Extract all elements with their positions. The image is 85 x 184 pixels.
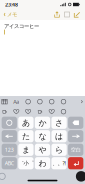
button[interactable]: Checklist <box>22 97 34 107</box>
button[interactable]: Heart emoji <box>10 107 22 117</box>
button[interactable]: ら <box>51 144 67 156</box>
staticText: 123 <box>5 146 14 153</box>
button[interactable]: Switch to ABC <box>2 157 17 169</box>
button[interactable]: さ <box>51 117 67 129</box>
button[interactable]: ゛小゜ <box>18 157 33 169</box>
staticText: ま <box>22 145 30 155</box>
button[interactable]: わ <box>35 157 50 169</box>
button[interactable]: は <box>51 130 67 142</box>
button[interactable]: な <box>35 130 50 142</box>
staticText: あ <box>22 118 30 128</box>
button[interactable]: Photo <box>34 97 46 107</box>
button[interactable]: 123 <box>2 144 17 156</box>
button[interactable]: More emoji <box>58 107 69 117</box>
button[interactable]: あ <box>18 117 33 129</box>
staticText: ゛小゜ <box>18 160 33 167</box>
button[interactable]: Share <box>52 9 62 20</box>
staticText: メモ <box>7 11 17 18</box>
button[interactable]: Markup <box>58 97 69 107</box>
button[interactable]: Camera <box>46 97 58 107</box>
staticText: 空白 <box>71 146 81 153</box>
staticText: アイスコーヒー <box>4 23 39 30</box>
button[interactable]: や <box>35 144 50 156</box>
staticText: 、。?! <box>53 160 66 167</box>
button[interactable]: Delete <box>68 117 83 129</box>
staticText: 23:48 <box>5 1 18 8</box>
button[interactable]: Dictation <box>76 171 85 182</box>
staticText: は <box>55 131 63 141</box>
staticText: た <box>22 131 30 141</box>
button[interactable]: Send <box>68 157 83 169</box>
button[interactable]: Emoji keyboard <box>2 117 17 129</box>
button[interactable]: 、。?! <box>51 157 67 169</box>
button[interactable]: Heart suit emoji <box>22 107 34 117</box>
button[interactable]: Hot beverage emoji <box>34 107 46 117</box>
staticText: な <box>38 131 46 141</box>
button[interactable]: Compose <box>72 9 82 20</box>
button[interactable]: Heart outline emoji <box>46 107 58 117</box>
button[interactable]: Coffee emoji <box>0 107 10 117</box>
staticText: ABC <box>5 160 14 167</box>
staticText: や <box>38 145 46 155</box>
staticText: さ <box>55 118 63 128</box>
staticText: か <box>38 118 46 128</box>
button[interactable]: Table <box>0 97 10 107</box>
staticText: ら <box>55 145 63 155</box>
button[interactable]: メモ <box>3 9 17 20</box>
button[interactable]: 空白 <box>68 144 83 156</box>
button[interactable]: Hide toolbar <box>77 97 85 107</box>
button[interactable]: Switch keyboard <box>0 173 6 180</box>
button[interactable]: Move left <box>2 130 17 142</box>
staticText: わ <box>38 158 46 168</box>
button[interactable]: Markup <box>62 9 72 20</box>
staticText: Aa <box>13 98 19 105</box>
button[interactable]: か <box>35 117 50 129</box>
button[interactable]: ま <box>18 144 33 156</box>
button[interactable]: Text format <box>10 97 22 107</box>
button[interactable]: Move right <box>68 130 83 142</box>
button[interactable]: た <box>18 130 33 142</box>
